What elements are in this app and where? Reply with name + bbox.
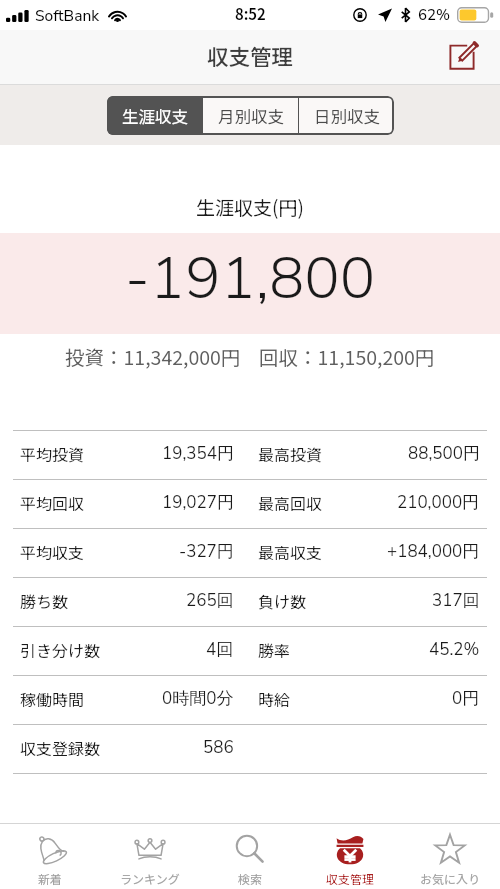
staticText: +184,000円 bbox=[387, 540, 480, 563]
button[interactable]: ランキング bbox=[100, 824, 200, 889]
staticText: 19,027円 bbox=[162, 491, 234, 514]
staticText: ランキング bbox=[120, 870, 180, 887]
staticText: 回収：11,150,200円 bbox=[259, 342, 435, 370]
staticText: SoftBank bbox=[35, 5, 100, 26]
staticText: 生涯収支(円) bbox=[196, 193, 304, 219]
staticText: 0時間0分 bbox=[162, 687, 234, 710]
staticText: 最高収支 bbox=[258, 540, 323, 563]
staticText: 投資：11,342,000円 bbox=[65, 342, 241, 370]
staticText: 0円 bbox=[452, 687, 480, 710]
button[interactable]: 月別収支 bbox=[203, 96, 298, 135]
staticText: 日別収支 bbox=[314, 104, 380, 128]
staticText: 平均収支 bbox=[20, 540, 85, 563]
staticText: 勝率 bbox=[258, 638, 291, 661]
staticText: 586 bbox=[203, 736, 234, 759]
staticText: 新着 bbox=[38, 870, 63, 887]
staticText: 月別収支 bbox=[218, 104, 284, 128]
staticText: 勝ち数 bbox=[20, 589, 69, 612]
staticText: お気に入り bbox=[420, 870, 481, 887]
staticText: 45.2% bbox=[429, 638, 480, 661]
staticText: 88,500円 bbox=[408, 442, 480, 465]
staticText: 210,000円 bbox=[397, 491, 480, 514]
button[interactable]: 検索 bbox=[200, 824, 300, 889]
staticText: 収支登録数 bbox=[20, 736, 101, 759]
staticText: 62% bbox=[418, 5, 450, 25]
staticText: 317回 bbox=[432, 589, 480, 612]
button[interactable]: 編集 bbox=[443, 35, 485, 77]
staticText: 19,354円 bbox=[162, 442, 234, 465]
staticText: 検索 bbox=[238, 870, 263, 887]
staticText: 収支管理 bbox=[207, 40, 294, 71]
staticText: 平均投資 bbox=[20, 442, 85, 465]
staticText: 4回 bbox=[206, 638, 234, 661]
staticText: 最高投資 bbox=[258, 442, 323, 465]
staticText: 稼働時間 bbox=[20, 687, 85, 710]
staticText: -327円 bbox=[179, 540, 234, 563]
button[interactable]: お気に入り bbox=[400, 824, 500, 889]
staticText: 265回 bbox=[186, 589, 234, 612]
staticText: 8:52 bbox=[235, 3, 266, 25]
staticText: 引き分け数 bbox=[20, 638, 101, 661]
button[interactable]: 新着 bbox=[0, 824, 100, 889]
staticText: 生涯収支 bbox=[122, 104, 188, 128]
button[interactable]: 生涯収支 bbox=[107, 96, 202, 135]
staticText: 収支管理 bbox=[326, 870, 375, 887]
staticText: 時給 bbox=[258, 687, 291, 710]
staticText: 平均回収 bbox=[20, 491, 85, 514]
staticText: 負け数 bbox=[258, 589, 307, 612]
staticText: -191,800 bbox=[125, 238, 376, 318]
staticText: 最高回収 bbox=[258, 491, 323, 514]
button[interactable]: 収支管理 bbox=[300, 824, 400, 889]
button[interactable]: 日別収支 bbox=[299, 96, 394, 135]
